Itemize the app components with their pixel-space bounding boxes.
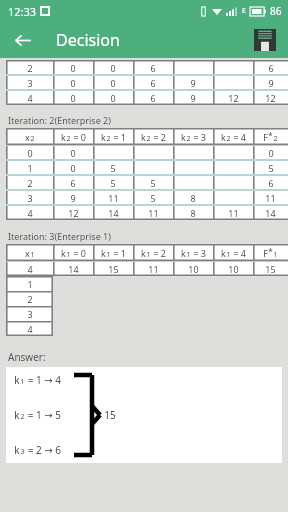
staticText: 2 (186, 134, 191, 144)
staticText: 14 (108, 207, 119, 219)
staticText: 6 (70, 177, 76, 189)
staticText: k (181, 131, 186, 143)
staticText: 10 (188, 263, 199, 275)
staticText: 5 (150, 192, 156, 204)
staticText: 0 (268, 147, 274, 159)
staticText: 8 (190, 192, 196, 204)
staticText: 0 (110, 77, 116, 89)
staticText: 1 (186, 250, 191, 260)
staticText: 6 (150, 92, 156, 104)
staticText: 10 (228, 263, 239, 275)
staticText: = 4 (231, 247, 246, 259)
staticText: 0 (70, 147, 76, 159)
staticText: 1 (273, 250, 278, 260)
staticText: 2 (30, 134, 35, 144)
staticText: 6 (268, 177, 274, 189)
staticText: 2 (226, 134, 231, 144)
staticText: Iteration: 2(Enterprise 2) (8, 114, 111, 126)
staticText: 11 (148, 263, 159, 275)
staticText: 4 (27, 323, 33, 335)
staticText: 11 (148, 207, 159, 219)
staticText: 1 (30, 250, 35, 260)
staticText: k (101, 131, 106, 143)
staticText: 2 (27, 293, 33, 305)
staticText: 14 (265, 207, 276, 219)
staticText: 2 (20, 412, 25, 422)
staticText: k (14, 373, 20, 387)
staticText: 14 (68, 263, 79, 275)
staticText: = 0 (71, 131, 86, 143)
staticText: 11 (228, 207, 239, 219)
staticText: k (14, 443, 20, 457)
staticText: 2 (273, 134, 278, 144)
staticText: = 2 (151, 131, 166, 143)
staticText: 3 (27, 308, 33, 320)
staticText: x (25, 131, 30, 143)
staticText: 1 (20, 377, 25, 387)
staticText: Iteration: 3(Enterprise 1) (8, 230, 111, 242)
staticText: = 3 (191, 131, 206, 143)
staticText: = 4 (231, 131, 246, 143)
staticText: * (268, 130, 273, 141)
staticText: 2 (66, 134, 71, 144)
staticText: 2 (27, 62, 33, 74)
staticText: 2 (106, 134, 111, 144)
staticText: 5 (268, 162, 274, 174)
staticText: 5 (150, 177, 156, 189)
staticText: Answer: (8, 350, 46, 364)
staticText: 15 (104, 408, 116, 422)
staticText: 11 (265, 192, 276, 204)
staticText: 5 (110, 162, 116, 174)
staticText: F (263, 247, 268, 259)
staticText: 2 (146, 134, 151, 144)
staticText: 86 (270, 4, 282, 18)
staticText: 1 (146, 250, 151, 260)
staticText: 2 (27, 177, 33, 189)
staticText: 4 (27, 92, 33, 104)
staticText: = 1 → 4 (25, 373, 61, 387)
staticText: 11 (108, 192, 119, 204)
staticText: 4 (27, 263, 33, 275)
staticText: = 3 (191, 247, 206, 259)
staticText: 15 (108, 263, 119, 275)
staticText: k (221, 131, 226, 143)
staticText: 12 (68, 207, 79, 219)
staticText: 6 (150, 77, 156, 89)
staticText: 1 (66, 250, 71, 260)
staticText: 6 (150, 62, 156, 74)
staticText: 12 (265, 92, 276, 104)
staticText: E (242, 6, 246, 16)
staticText: * (268, 246, 273, 257)
button[interactable]: Save (250, 25, 280, 55)
staticText: = 1 (111, 247, 126, 259)
staticText: 6 (268, 62, 274, 74)
staticText: k (101, 247, 106, 259)
staticText: F (263, 131, 268, 143)
staticText: 3 (27, 77, 33, 89)
staticText: 0 (70, 62, 76, 74)
staticText: 15 (265, 263, 276, 275)
staticText: 12:33 (8, 4, 37, 19)
button[interactable]: Back (8, 26, 36, 54)
staticText: 12 (228, 92, 239, 104)
staticText: 0 (70, 77, 76, 89)
staticText: 4 (27, 207, 33, 219)
staticText: 3 (27, 192, 33, 204)
staticText: x (25, 247, 30, 259)
staticText: = 1 → 5 (25, 408, 61, 422)
staticText: 0 (70, 162, 76, 174)
staticText: 1 (106, 250, 111, 260)
staticText: k (181, 247, 186, 259)
staticText: 9 (190, 77, 196, 89)
staticText: 0 (110, 92, 116, 104)
staticText: k (61, 131, 66, 143)
staticText: k (61, 247, 66, 259)
staticText: k (14, 408, 20, 422)
staticText: 1 (226, 250, 231, 260)
staticText: = 0 (71, 247, 86, 259)
staticText: 1 (27, 278, 33, 290)
staticText: 1 (27, 162, 33, 174)
staticText: k (221, 247, 226, 259)
staticText: 9 (70, 192, 76, 204)
staticText: 0 (70, 92, 76, 104)
